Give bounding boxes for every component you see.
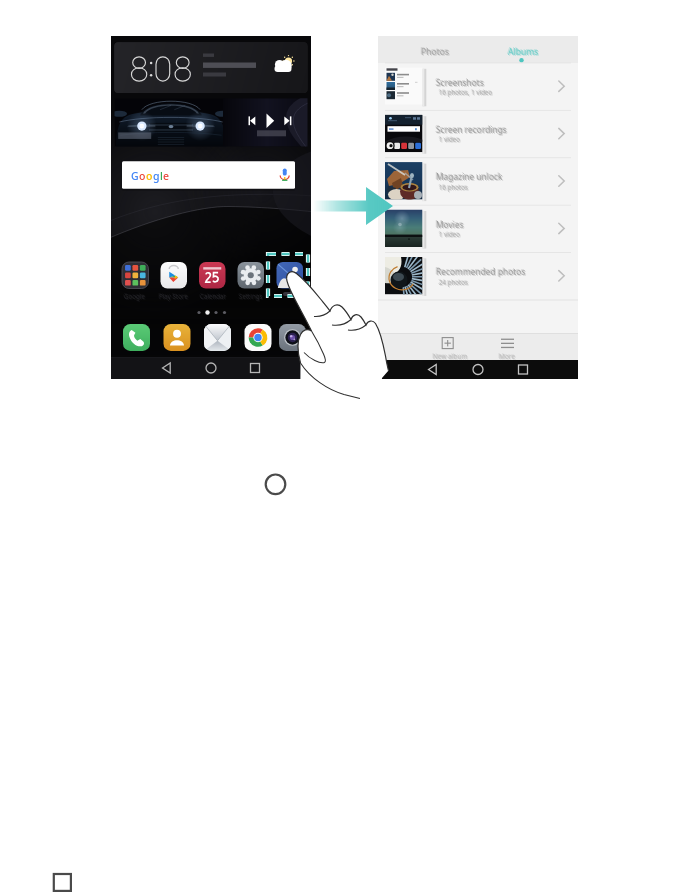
staticText: 24 photos bbox=[440, 279, 470, 287]
staticText: Calendar bbox=[200, 292, 227, 300]
staticText: 1 video bbox=[440, 136, 461, 144]
staticText: e bbox=[163, 169, 170, 183]
staticText: New album bbox=[433, 352, 468, 361]
staticText: o bbox=[146, 169, 153, 183]
staticText: 1 video bbox=[438, 229, 459, 237]
staticText: Photos bbox=[420, 45, 449, 57]
staticText: More bbox=[499, 352, 516, 361]
staticText: Albums bbox=[509, 47, 540, 59]
button[interactable]: Drag an app icon into the gallery tutori… bbox=[0, 0, 681, 895]
staticText: Google bbox=[123, 291, 144, 299]
staticText: Photos bbox=[422, 47, 451, 59]
staticText: Albums bbox=[507, 45, 538, 57]
staticText: 16 photos bbox=[440, 184, 470, 192]
staticText: Screenshots bbox=[436, 77, 484, 88]
staticText: 24 photos bbox=[439, 278, 469, 286]
staticText: Recommended photos bbox=[435, 265, 525, 276]
staticText: G bbox=[131, 169, 139, 183]
staticText: Play Store bbox=[158, 291, 187, 299]
staticText: 16 photos, 1 video bbox=[438, 87, 492, 95]
staticText: Movies bbox=[436, 219, 464, 230]
staticText: Magazine unlock bbox=[435, 170, 502, 181]
staticText: More bbox=[500, 353, 517, 362]
staticText: Movies bbox=[437, 220, 465, 231]
staticText: 1 video bbox=[439, 135, 460, 143]
staticText: More bbox=[498, 351, 515, 360]
staticText: 1 video bbox=[439, 230, 460, 238]
staticText: Screen recordings bbox=[436, 124, 507, 135]
staticText: Magazine unlock bbox=[436, 171, 503, 182]
staticText: Albums bbox=[508, 46, 539, 58]
staticText: Settings bbox=[238, 291, 262, 299]
staticText: 16 photos, 1 video bbox=[440, 89, 494, 97]
staticText: Calendar bbox=[199, 291, 226, 299]
staticText: Settings bbox=[239, 292, 263, 300]
staticText: Settings bbox=[240, 293, 264, 301]
staticText: New album bbox=[434, 353, 469, 362]
staticText: Google bbox=[125, 293, 146, 301]
staticText: 24 photos bbox=[438, 277, 468, 285]
staticText: 1 video bbox=[440, 231, 461, 239]
staticText: Recommended photos bbox=[436, 266, 526, 277]
staticText: Google bbox=[124, 292, 145, 300]
staticText: 16 photos bbox=[439, 183, 469, 191]
staticText: Movies bbox=[435, 218, 463, 229]
staticText: New album bbox=[432, 351, 467, 360]
staticText: Calendar bbox=[201, 293, 228, 301]
staticText: o bbox=[139, 169, 146, 183]
staticText: l bbox=[160, 169, 163, 183]
staticText: Screen recordings bbox=[435, 123, 506, 134]
staticText: Magazine unlock bbox=[437, 172, 504, 183]
staticText: 16 photos, 1 video bbox=[439, 88, 493, 96]
staticText: Screen recordings bbox=[437, 125, 508, 136]
staticText: Play Store bbox=[160, 293, 189, 301]
staticText: 1 video bbox=[438, 134, 459, 142]
staticText: Recommended photos bbox=[437, 267, 527, 278]
staticText: Photos bbox=[421, 46, 450, 58]
staticText: Play Store bbox=[159, 292, 188, 300]
staticText: 16 photos bbox=[438, 182, 468, 190]
staticText: g bbox=[153, 169, 160, 183]
staticText: Screenshots bbox=[435, 76, 483, 87]
staticText: Screenshots bbox=[437, 78, 485, 89]
